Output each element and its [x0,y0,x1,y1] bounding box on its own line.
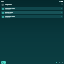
button[interactable]: Home [55,61,57,63]
staticText: Focus flow [5,11,14,13]
staticText: Evening calm [5,15,16,17]
button[interactable]: Profile [61,61,63,63]
button[interactable]: Morning mix [1,7,63,10]
button[interactable]: Evening calm [1,15,63,18]
button[interactable]: Menu [1,3,4,6]
staticText: Library [5,3,12,6]
staticText: New [3,62,5,64]
staticText: Chill beats [5,13,12,14]
button[interactable]: Focus flow [1,11,63,14]
button[interactable]: Search [61,3,63,5]
staticText: Ambient [5,17,11,18]
staticText: 18 tracks [5,9,11,10]
staticText: 9:41 [1,0,5,2]
staticText: Morning mix [5,7,15,9]
button[interactable]: Browse [58,61,60,63]
button[interactable]: New [1,61,6,64]
